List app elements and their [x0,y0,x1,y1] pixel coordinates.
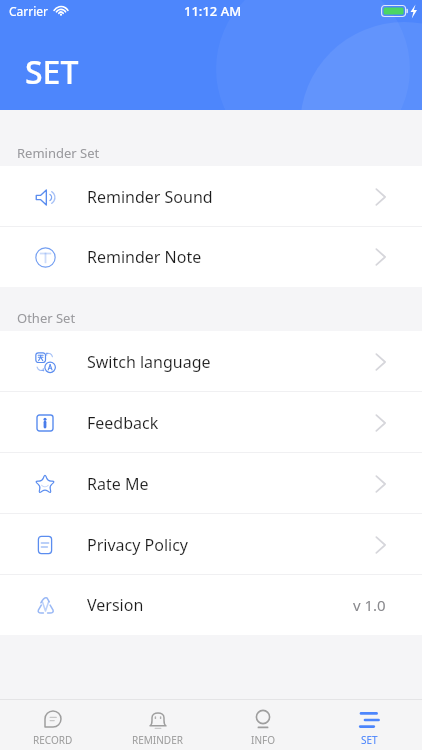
button[interactable]: REMINDER [105,700,210,750]
staticText: RECORD [33,733,73,747]
staticText: Rate Me [87,473,149,495]
staticText: Other Set [17,309,76,327]
button[interactable]: Version [0,575,422,635]
button[interactable]: Reminder Note [0,227,422,287]
staticText: Switch language [87,351,211,373]
staticText: Version [87,594,144,616]
staticText: INFO [251,733,275,747]
staticText: Feedback [87,412,159,434]
staticText: REMINDER [132,733,183,747]
staticText: 11:12 AM [184,2,242,20]
button[interactable]: Rate Me [0,453,422,514]
button[interactable]: SET [316,700,422,750]
button[interactable]: Feedback [0,392,422,453]
staticText: Privacy Policy [87,534,188,556]
button[interactable]: INFO [210,700,316,750]
staticText: Reminder Set [17,144,100,162]
button[interactable]: Reminder Sound [0,166,422,227]
staticText: Reminder Sound [87,186,213,208]
staticText: v 1.0 [353,595,386,615]
staticText: Reminder Note [87,246,202,268]
staticText: SET [361,733,378,747]
button[interactable]: RECORD [0,700,105,750]
button[interactable]: Switch language [0,331,422,392]
button[interactable]: Privacy Policy [0,514,422,575]
staticText: Carrier [9,3,49,19]
staticText: SET [25,50,79,94]
